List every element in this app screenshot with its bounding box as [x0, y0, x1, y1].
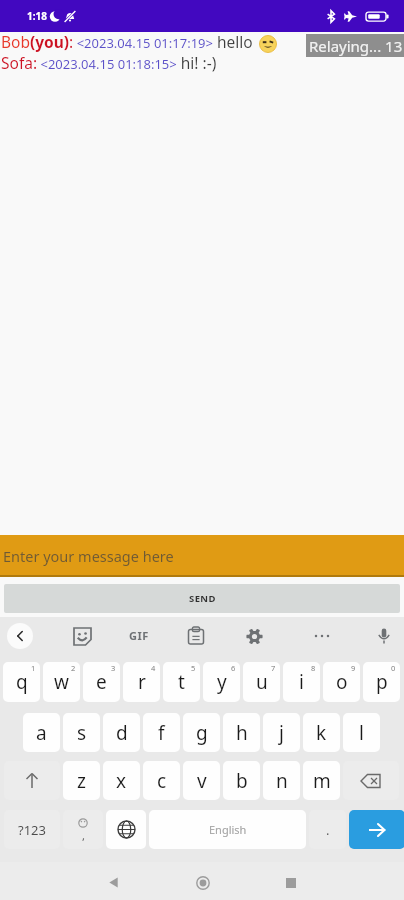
- staticText: ,: [82, 828, 85, 843]
- staticText: z: [77, 768, 86, 794]
- button[interactable]: b: [223, 761, 260, 800]
- staticText: p: [376, 669, 388, 695]
- button[interactable]: Settings: [241, 623, 267, 649]
- staticText: 3: [111, 663, 116, 673]
- button[interactable]: Home: [189, 862, 217, 900]
- button[interactable]: Backspace: [343, 761, 399, 800]
- button[interactable]: a: [23, 713, 60, 752]
- staticText: Enter your message here: [3, 546, 174, 566]
- button[interactable]: h: [223, 713, 260, 752]
- button[interactable]: m: [303, 761, 340, 800]
- button[interactable]: SEND: [4, 584, 400, 613]
- staticText: x: [116, 768, 127, 794]
- button[interactable]: Back: [7, 623, 33, 649]
- staticText: q: [16, 669, 28, 695]
- staticText: w: [54, 669, 69, 695]
- button[interactable]: f: [143, 713, 180, 752]
- button[interactable]: Relaying... 13: [306, 34, 404, 57]
- staticText: y: [217, 669, 227, 695]
- staticText: 8: [311, 663, 316, 673]
- staticText: 7: [271, 663, 276, 673]
- staticText: 9: [351, 663, 356, 673]
- button[interactable]: y: [203, 662, 240, 702]
- staticText: h: [236, 720, 248, 746]
- button[interactable]: p: [363, 662, 400, 702]
- staticText: 1:18: [27, 9, 47, 23]
- button[interactable]: k: [303, 713, 340, 752]
- staticText: n: [276, 768, 288, 794]
- staticText: 2: [71, 663, 76, 673]
- button[interactable]: Voice input: [371, 623, 397, 649]
- button[interactable]: d: [103, 713, 140, 752]
- button[interactable]: q: [3, 662, 40, 702]
- staticText: 0: [391, 663, 396, 673]
- staticText: Bob(you): <2023.04.15 01:17:19> hello: [1, 31, 257, 52]
- staticText: c: [157, 768, 167, 794]
- button[interactable]: c: [143, 761, 180, 800]
- button[interactable]: English: [149, 810, 306, 849]
- staticText: j: [279, 720, 284, 746]
- button[interactable]: Emoji and comma: [63, 810, 103, 849]
- button[interactable]: o: [323, 662, 360, 702]
- button[interactable]: v: [183, 761, 220, 800]
- button[interactable]: GIF: [124, 620, 154, 650]
- button[interactable]: z: [63, 761, 100, 800]
- staticText: s: [77, 720, 87, 746]
- staticText: 1: [31, 663, 36, 673]
- staticText: f: [158, 720, 165, 746]
- staticText: i: [299, 669, 304, 695]
- staticText: d: [116, 720, 128, 746]
- button[interactable]: t: [163, 662, 200, 702]
- button[interactable]: Shift: [4, 761, 60, 800]
- button[interactable]: Stickers: [69, 623, 95, 649]
- button[interactable]: x: [103, 761, 140, 800]
- staticText: r: [138, 669, 146, 695]
- staticText: English: [209, 822, 247, 837]
- staticText: g: [196, 720, 208, 746]
- staticText: .: [326, 821, 330, 839]
- button[interactable]: w: [43, 662, 80, 702]
- button[interactable]: Enter: [349, 810, 404, 849]
- staticText: SEND: [189, 592, 216, 605]
- button[interactable]: .: [309, 810, 346, 849]
- staticText: e: [96, 669, 107, 695]
- button[interactable]: r: [123, 662, 160, 702]
- staticText: l: [359, 720, 364, 746]
- staticText: 4: [151, 663, 156, 673]
- button[interactable]: Clipboard: [183, 623, 209, 649]
- button[interactable]: u: [243, 662, 280, 702]
- staticText: u: [256, 669, 268, 695]
- staticText: b: [236, 768, 248, 794]
- staticText: t: [178, 669, 185, 695]
- button[interactable]: s: [63, 713, 100, 752]
- button[interactable]: g: [183, 713, 220, 752]
- staticText: ?123: [18, 821, 46, 839]
- staticText: v: [197, 768, 207, 794]
- button[interactable]: Back: [99, 862, 127, 900]
- button[interactable]: n: [263, 761, 300, 800]
- staticText: a: [36, 720, 47, 746]
- button[interactable]: j: [263, 713, 300, 752]
- staticText: GIF: [129, 628, 149, 643]
- button[interactable]: Recents: [277, 862, 305, 900]
- staticText: m: [313, 768, 331, 794]
- button[interactable]: e: [83, 662, 120, 702]
- button[interactable]: More options: [309, 623, 335, 649]
- staticText: Relaying... 13: [309, 36, 403, 56]
- staticText: 6: [231, 663, 236, 673]
- button[interactable]: i: [283, 662, 320, 702]
- staticText: Sofa: <2023.04.15 01:18:15> hi! :-): [1, 52, 217, 73]
- staticText: o: [336, 669, 348, 695]
- staticText: k: [316, 720, 327, 746]
- button[interactable]: Change language: [106, 810, 146, 849]
- button[interactable]: ?123: [4, 810, 60, 849]
- button[interactable]: l: [343, 713, 380, 752]
- staticText: 5: [191, 663, 196, 673]
